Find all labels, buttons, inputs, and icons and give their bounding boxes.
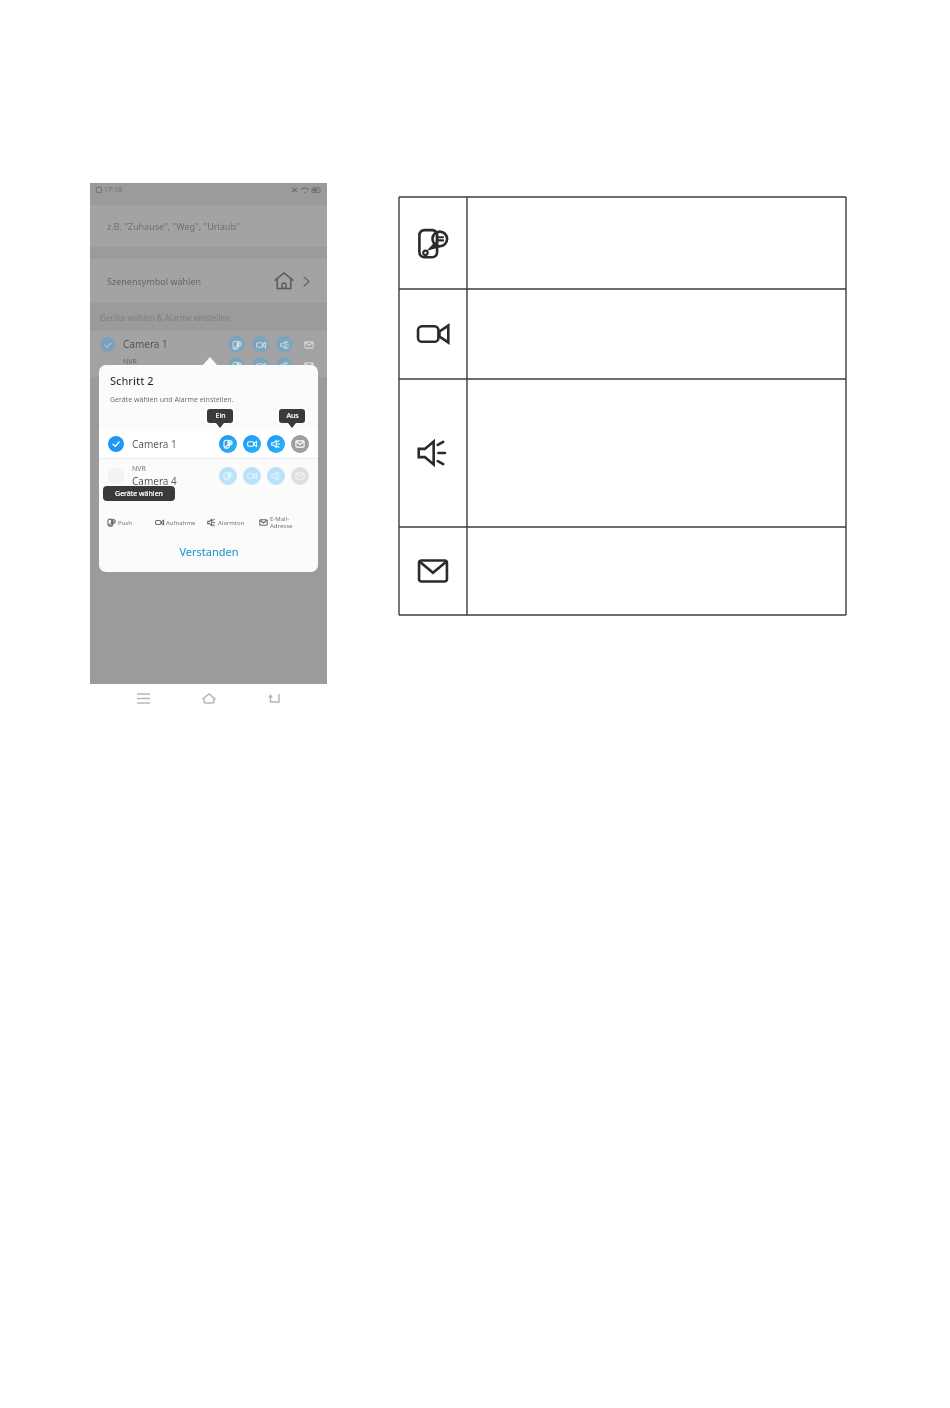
staticText: 17:18 [104, 185, 122, 195]
staticText: Geräte wählen und Alarme einstellen. [110, 395, 234, 405]
button[interactable]: Recording [252, 336, 269, 353]
button[interactable]: Verstanden [99, 539, 318, 563]
button[interactable]: Alarm sound [276, 336, 293, 353]
button[interactable]: z.B. "Zuhause", "Weg", "Urlaub" [90, 205, 327, 247]
button[interactable]: Selected [100, 337, 115, 352]
staticText: z.B. "Zuhause", "Weg", "Urlaub" [107, 220, 240, 232]
button[interactable]: Recording [252, 357, 269, 374]
button[interactable]: Push notification [228, 357, 245, 374]
button[interactable]: Back [261, 685, 287, 711]
button[interactable]: Alarm sound [267, 435, 285, 453]
button[interactable]: Recording [243, 467, 261, 485]
button[interactable]: Home [196, 685, 222, 711]
staticText: Alarmton [218, 519, 252, 527]
button[interactable]: E-mail [300, 336, 317, 353]
staticText: Aus [286, 411, 299, 421]
staticText: Verstanden [179, 544, 239, 559]
staticText: Camera 1 [123, 337, 168, 351]
staticText: Geräte wählen & Alarme einstellen [100, 312, 231, 323]
button[interactable]: E-mail [291, 467, 309, 485]
button[interactable]: Recording [243, 435, 261, 453]
staticText: Geräte wählen [115, 489, 163, 499]
button[interactable]: Not selected [99, 459, 318, 493]
button[interactable]: Szenensymbol wählen [90, 259, 327, 303]
button[interactable]: Recent apps [130, 685, 156, 711]
button[interactable]: Alarm sound [267, 467, 285, 485]
staticText: Camera 1 [132, 437, 177, 451]
staticText: Camera 4 [132, 474, 177, 488]
staticText: Schritt 2 [110, 373, 154, 388]
button[interactable]: Selected [108, 436, 124, 452]
staticText: E-Mail-Adresse [270, 515, 310, 530]
button[interactable]: Push notification [219, 435, 237, 453]
staticText: NVR [132, 464, 146, 474]
button[interactable]: E-mail [300, 357, 317, 374]
staticText: NVR [123, 357, 137, 367]
button[interactable]: Push notification [219, 467, 237, 485]
staticText: Ein [215, 411, 226, 421]
button[interactable]: Selected [99, 430, 318, 458]
button[interactable]: Selected [90, 331, 327, 357]
staticText: Push [118, 519, 148, 527]
staticText: Szenensymbol wählen [107, 275, 202, 287]
staticText: Aufnahme [166, 519, 200, 527]
button[interactable]: Push notification [228, 336, 245, 353]
button[interactable]: Alarm sound [276, 357, 293, 374]
button[interactable]: E-mail [291, 435, 309, 453]
